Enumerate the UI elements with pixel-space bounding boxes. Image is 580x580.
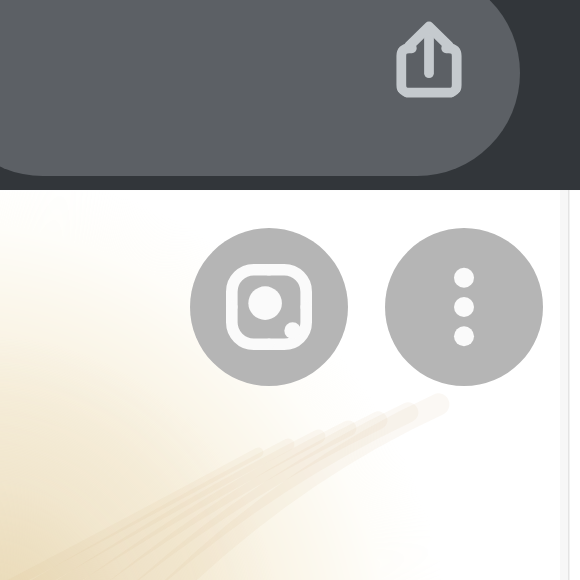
button[interactable]: Search with Google Lens bbox=[190, 228, 348, 386]
button[interactable]: More options bbox=[385, 228, 543, 386]
button[interactable]: Share bbox=[383, 12, 475, 104]
